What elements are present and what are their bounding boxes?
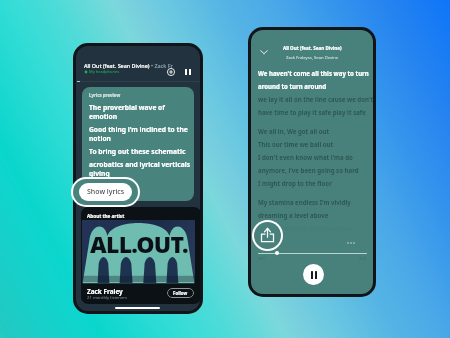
staticText: Show lyrics bbox=[87, 187, 125, 197]
staticText: Zack Fraleyss, Sean Devine bbox=[286, 55, 339, 61]
staticText: My headphones bbox=[89, 69, 120, 74]
staticText: Good thing i'm inclined to the bbox=[89, 125, 188, 134]
staticText: ALL.OUT. bbox=[90, 228, 188, 259]
staticText: Lyrics preview bbox=[89, 92, 121, 98]
staticText: I don't even know what i'ma do bbox=[258, 153, 353, 161]
staticText: giving bbox=[89, 169, 110, 178]
staticText: 21 monthly listeners bbox=[87, 295, 128, 301]
staticText: notion bbox=[89, 134, 111, 143]
button[interactable]: Collapse bbox=[256, 44, 271, 59]
button[interactable]: Pause bbox=[303, 264, 324, 285]
button[interactable]: Pause bbox=[180, 64, 195, 79]
staticText: We haven't come all this way to turn bbox=[258, 69, 369, 77]
button[interactable]: Follow bbox=[167, 288, 194, 298]
staticText: Zack Fraley bbox=[87, 287, 123, 296]
staticText: emotion bbox=[89, 112, 118, 121]
staticText: The proverbial wave of bbox=[89, 103, 165, 112]
staticText: I might drop to the floor bbox=[258, 179, 332, 187]
staticText: we lay it all on the line cause we don't bbox=[258, 95, 373, 103]
staticText: a better me this is my medicine bbox=[258, 224, 354, 232]
button[interactable]: More options bbox=[344, 236, 358, 250]
button[interactable]: Show lyrics bbox=[79, 183, 132, 201]
staticText: We all in, We got all out bbox=[258, 127, 330, 135]
staticText: Follow bbox=[173, 290, 188, 296]
button[interactable]: Add to playlist bbox=[163, 64, 178, 79]
button[interactable]: Share bbox=[254, 222, 281, 249]
staticText: About the artist bbox=[87, 213, 125, 219]
staticText: This our time we ball out bbox=[258, 140, 334, 148]
staticText: 3:12 bbox=[359, 256, 367, 261]
staticText: around to turn around bbox=[258, 82, 327, 90]
staticText: dreaming a level above bbox=[258, 211, 329, 219]
staticText: have time to play it safe play it safe bbox=[258, 108, 366, 116]
staticText: 0:41 bbox=[258, 256, 266, 261]
staticText: To bring out these schematic bbox=[89, 147, 186, 156]
staticText: • Zack Fr bbox=[151, 62, 173, 69]
staticText: My stamina endless I'm vividly bbox=[258, 198, 351, 206]
staticText: acrobatics and lyrical verticals bbox=[89, 160, 190, 169]
staticText: All Out (feat. Sean Divine) bbox=[283, 45, 342, 51]
staticText: All Out (feat. Sean Divine) bbox=[84, 62, 151, 69]
staticText: anymore, i've been going so hard bbox=[258, 166, 359, 174]
